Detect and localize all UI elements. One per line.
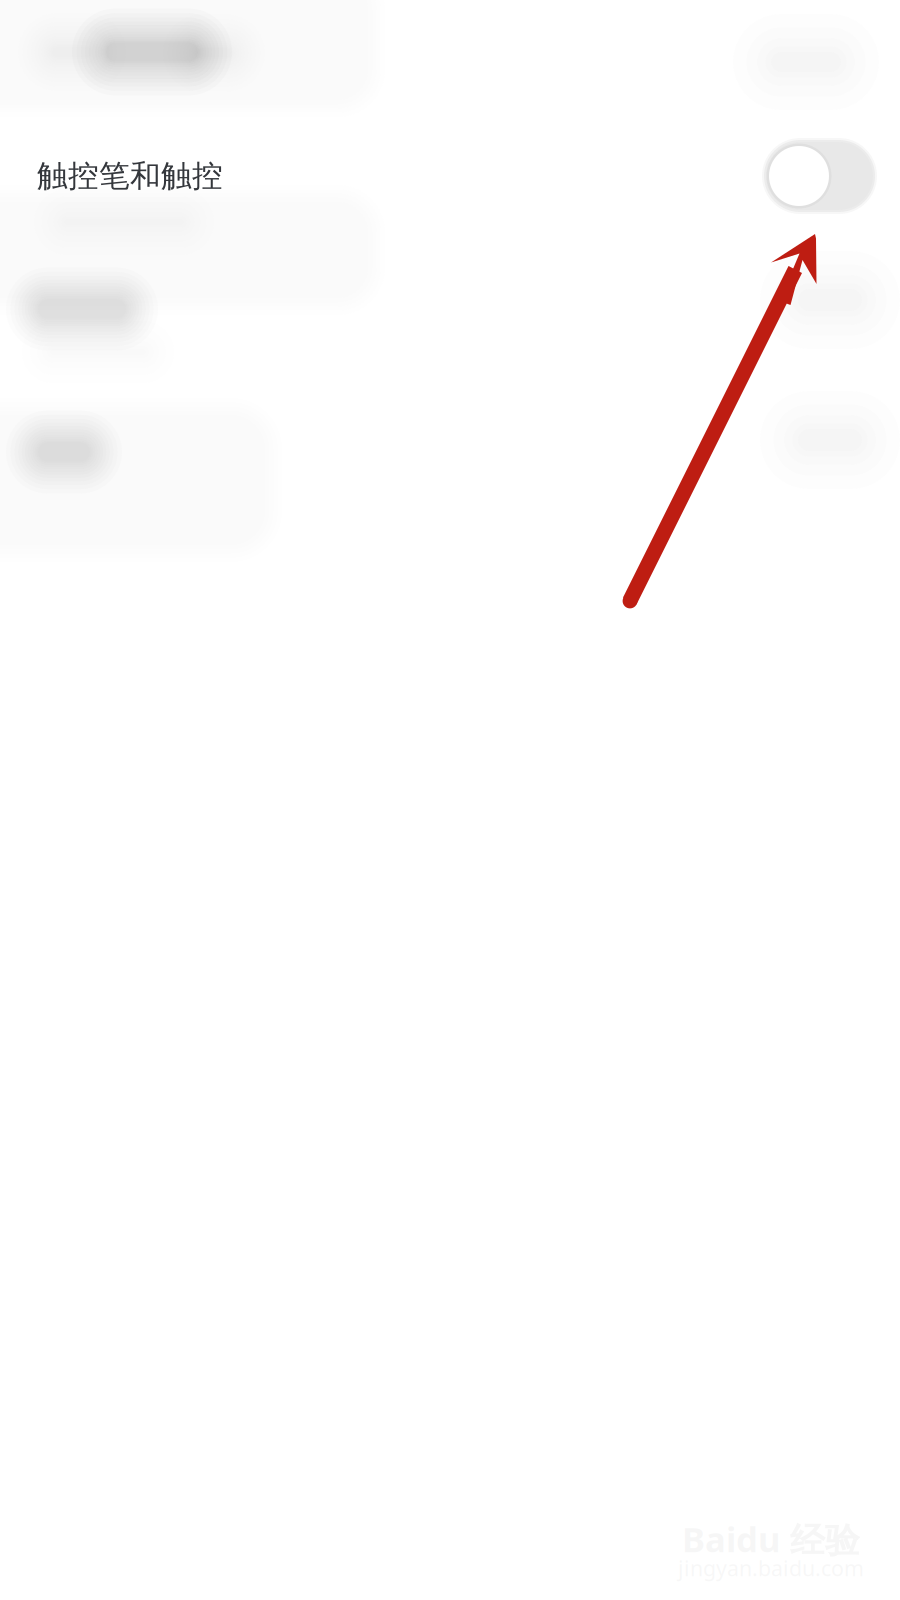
staticText: 触控笔和触控 xyxy=(37,157,223,195)
button[interactable]: 触控笔和触控 xyxy=(0,121,900,231)
staticText: Baidu 经验 xyxy=(682,1516,860,1562)
